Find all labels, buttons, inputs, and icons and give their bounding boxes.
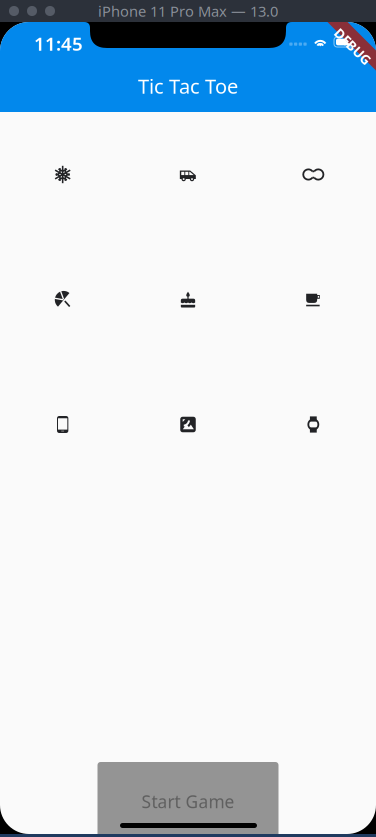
button[interactable]: Watch <box>251 362 376 487</box>
button[interactable]: Snowflake <box>0 112 125 237</box>
staticText: iPhone 11 Pro Max — 13.0 <box>98 1 278 21</box>
button[interactable]: Cake <box>125 237 251 362</box>
button[interactable]: Photo <box>125 362 251 487</box>
button[interactable]: Coffee <box>251 237 376 362</box>
staticText: Tic Tac Toe <box>138 73 238 99</box>
staticText: DEBUG <box>330 38 376 55</box>
staticText: 11:45 <box>34 31 83 56</box>
button[interactable]: Start Game <box>97 762 278 837</box>
staticText: Start Game <box>141 790 234 813</box>
button[interactable]: Infinity <box>251 112 376 237</box>
button[interactable]: Shuttle <box>125 112 251 237</box>
button[interactable]: Phone <box>0 362 125 487</box>
button[interactable]: Beach umbrella <box>0 237 125 362</box>
